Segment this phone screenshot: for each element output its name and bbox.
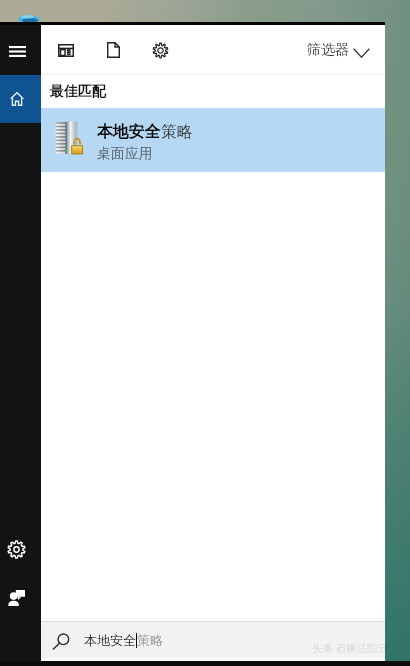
staticText: 策略 — [137, 632, 163, 648]
staticText: 头条 石狮法院云 — [312, 641, 389, 655]
staticText: 策略 — [161, 122, 193, 142]
button[interactable]: 筛选器 — [297, 25, 385, 75]
button[interactable]: Menu — [0, 25, 41, 75]
staticText: 筛选器 — [307, 41, 349, 59]
button[interactable]: Home — [0, 75, 41, 123]
button[interactable]: Settings — [0, 529, 41, 570]
staticText: 最佳匹配 — [50, 83, 106, 101]
button[interactable]: Settings results — [137, 25, 184, 75]
button[interactable]: Documents — [90, 25, 137, 75]
staticText: 本地安全 — [84, 632, 136, 648]
button[interactable]: Feedback — [0, 578, 41, 619]
staticText: 桌面应用 — [97, 145, 153, 163]
staticText: 本地安全 — [97, 122, 161, 142]
button[interactable]: 本地安全 — [41, 108, 385, 172]
button[interactable]: Apps — [42, 25, 89, 75]
